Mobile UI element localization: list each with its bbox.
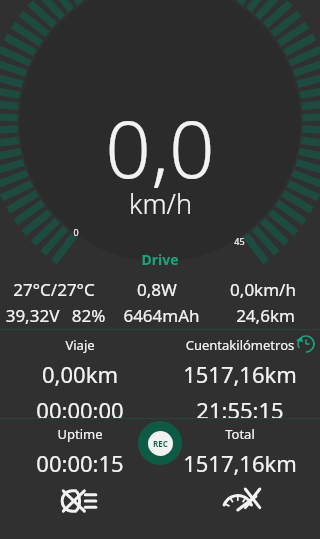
staticText: km/h [129, 185, 192, 222]
staticText: 39,32V [0, 304, 65, 327]
staticText: 1517,16km [160, 359, 320, 389]
staticText: Uptime [0, 425, 160, 443]
button[interactable]: Lights off [0, 477, 160, 525]
button[interactable]: Record [138, 421, 182, 465]
staticText: 21:55:15 [160, 395, 320, 418]
staticText: 0 [73, 226, 79, 238]
staticText: Total [160, 425, 320, 443]
staticText: 82% [65, 304, 112, 327]
button[interactable]: Reset odometer [296, 334, 316, 354]
staticText: REC [153, 438, 168, 449]
staticText: 1517,16km [160, 448, 320, 477]
staticText: 0,0km/h [206, 278, 320, 301]
staticText: 24,6km [211, 304, 320, 327]
staticText: 00:00:15 [0, 448, 160, 477]
staticText: 6464mAh [112, 304, 211, 327]
staticText: Viaje [0, 336, 160, 354]
staticText: Drive [141, 250, 179, 269]
staticText: 0,8W [108, 278, 206, 301]
staticText: 27°C/27°C [0, 278, 108, 301]
button[interactable]: Cruise control off [160, 477, 320, 525]
staticText: 00:00:00 [0, 395, 160, 418]
staticText: 0,0 [105, 92, 215, 201]
staticText: 45 [234, 235, 245, 247]
staticText: Cuentakilómetros [160, 336, 320, 354]
staticText: 0,00km [0, 359, 160, 389]
